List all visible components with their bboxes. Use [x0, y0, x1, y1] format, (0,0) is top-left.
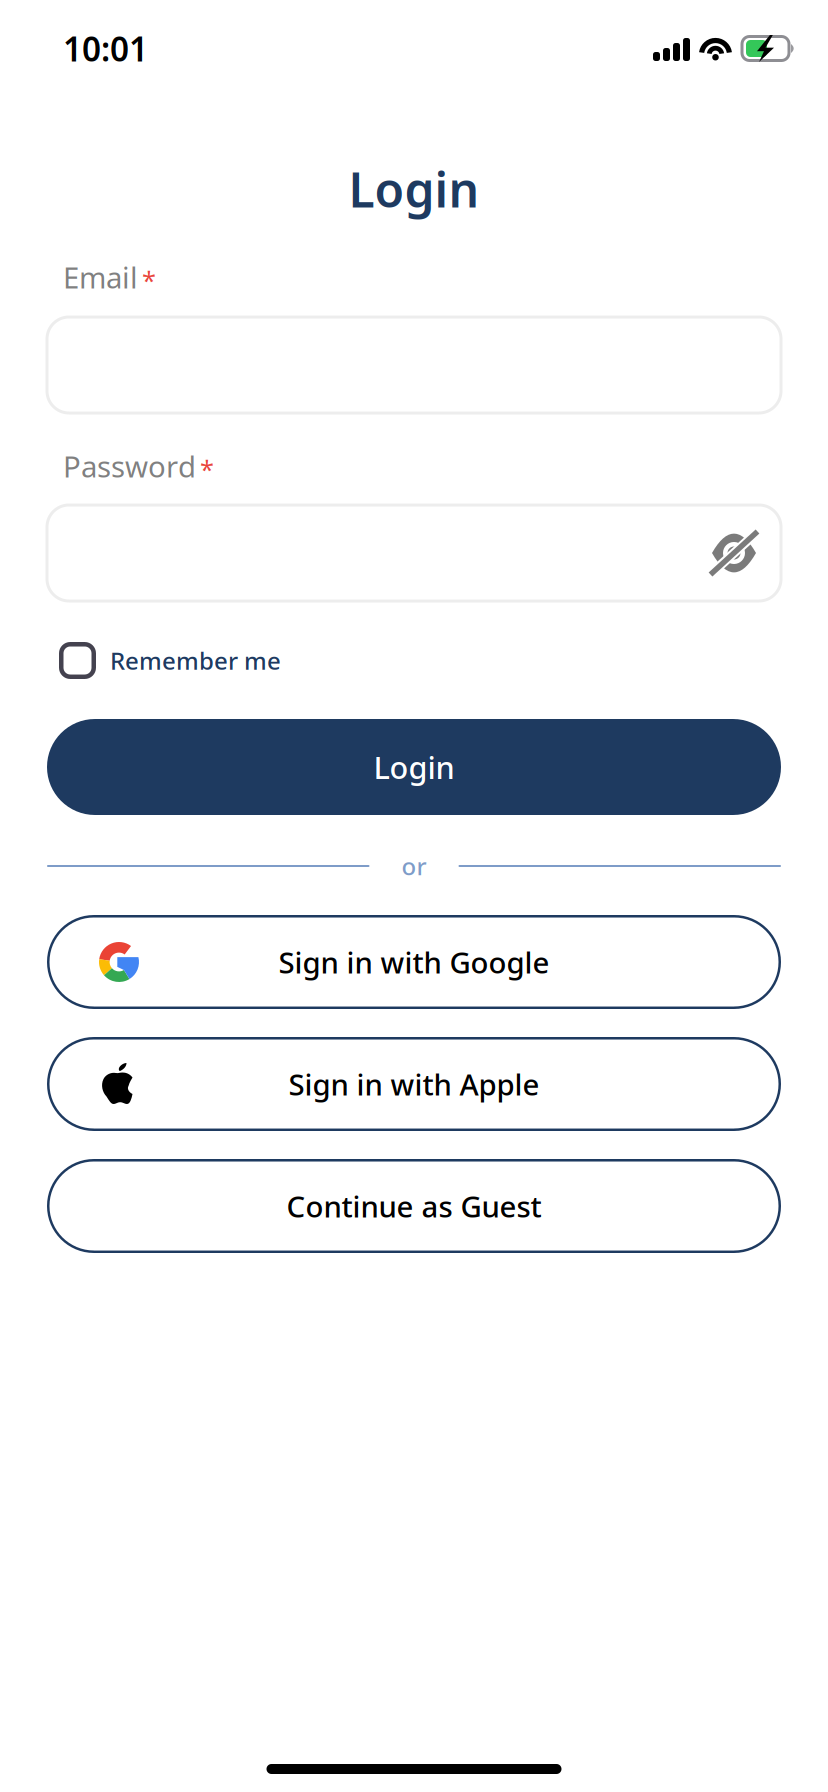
staticText: Password	[63, 446, 196, 485]
staticText: Login	[373, 747, 454, 787]
button[interactable]: Continue as Guest	[0, 1159, 828, 1253]
staticText: *	[193, 452, 214, 486]
staticText: Login	[348, 157, 479, 221]
staticText: Continue as Guest	[286, 1186, 541, 1225]
staticText: Remember me	[110, 645, 281, 676]
staticText: or	[401, 850, 426, 882]
button[interactable]: Sign in with Google	[0, 915, 828, 1009]
staticText: Sign in with Apple	[288, 1064, 539, 1103]
button[interactable]: Remember me	[0, 642, 828, 679]
staticText: 10:01	[63, 26, 148, 71]
button[interactable]: Show password	[711, 531, 781, 575]
staticText: Email	[63, 257, 138, 296]
button[interactable]: Sign in with Apple	[0, 1037, 828, 1131]
staticText: *	[135, 263, 156, 297]
button[interactable]: Login	[0, 719, 828, 815]
staticText: Sign in with Google	[278, 942, 549, 981]
